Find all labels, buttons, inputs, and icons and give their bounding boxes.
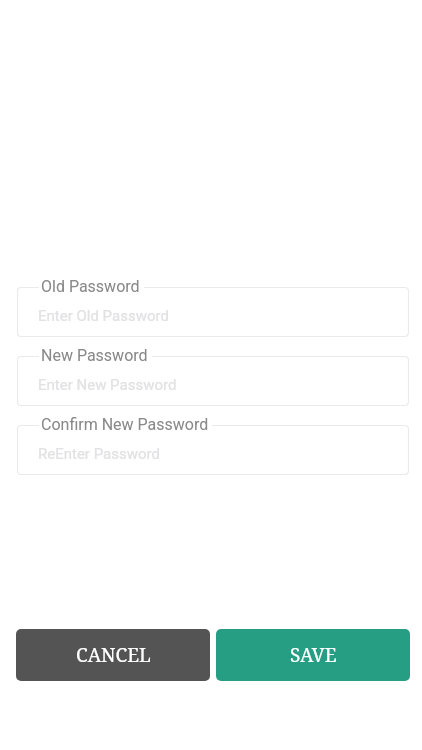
staticText: New Password [41,346,148,365]
staticText: CANCEL [76,642,151,668]
staticText: Confirm New Password [41,415,209,434]
button[interactable]: SAVE [216,629,410,681]
staticText: Enter New Password [38,376,177,394]
button[interactable]: CANCEL [16,629,210,681]
button[interactable]: Enter New Password [17,344,409,406]
staticText: SAVE [290,642,337,668]
button[interactable]: Enter Old Password [17,275,409,337]
staticText: Old Password [41,277,140,296]
button[interactable]: ReEnter Password [17,413,409,475]
staticText: ReEnter Password [38,445,160,463]
staticText: Enter Old Password [38,307,169,325]
